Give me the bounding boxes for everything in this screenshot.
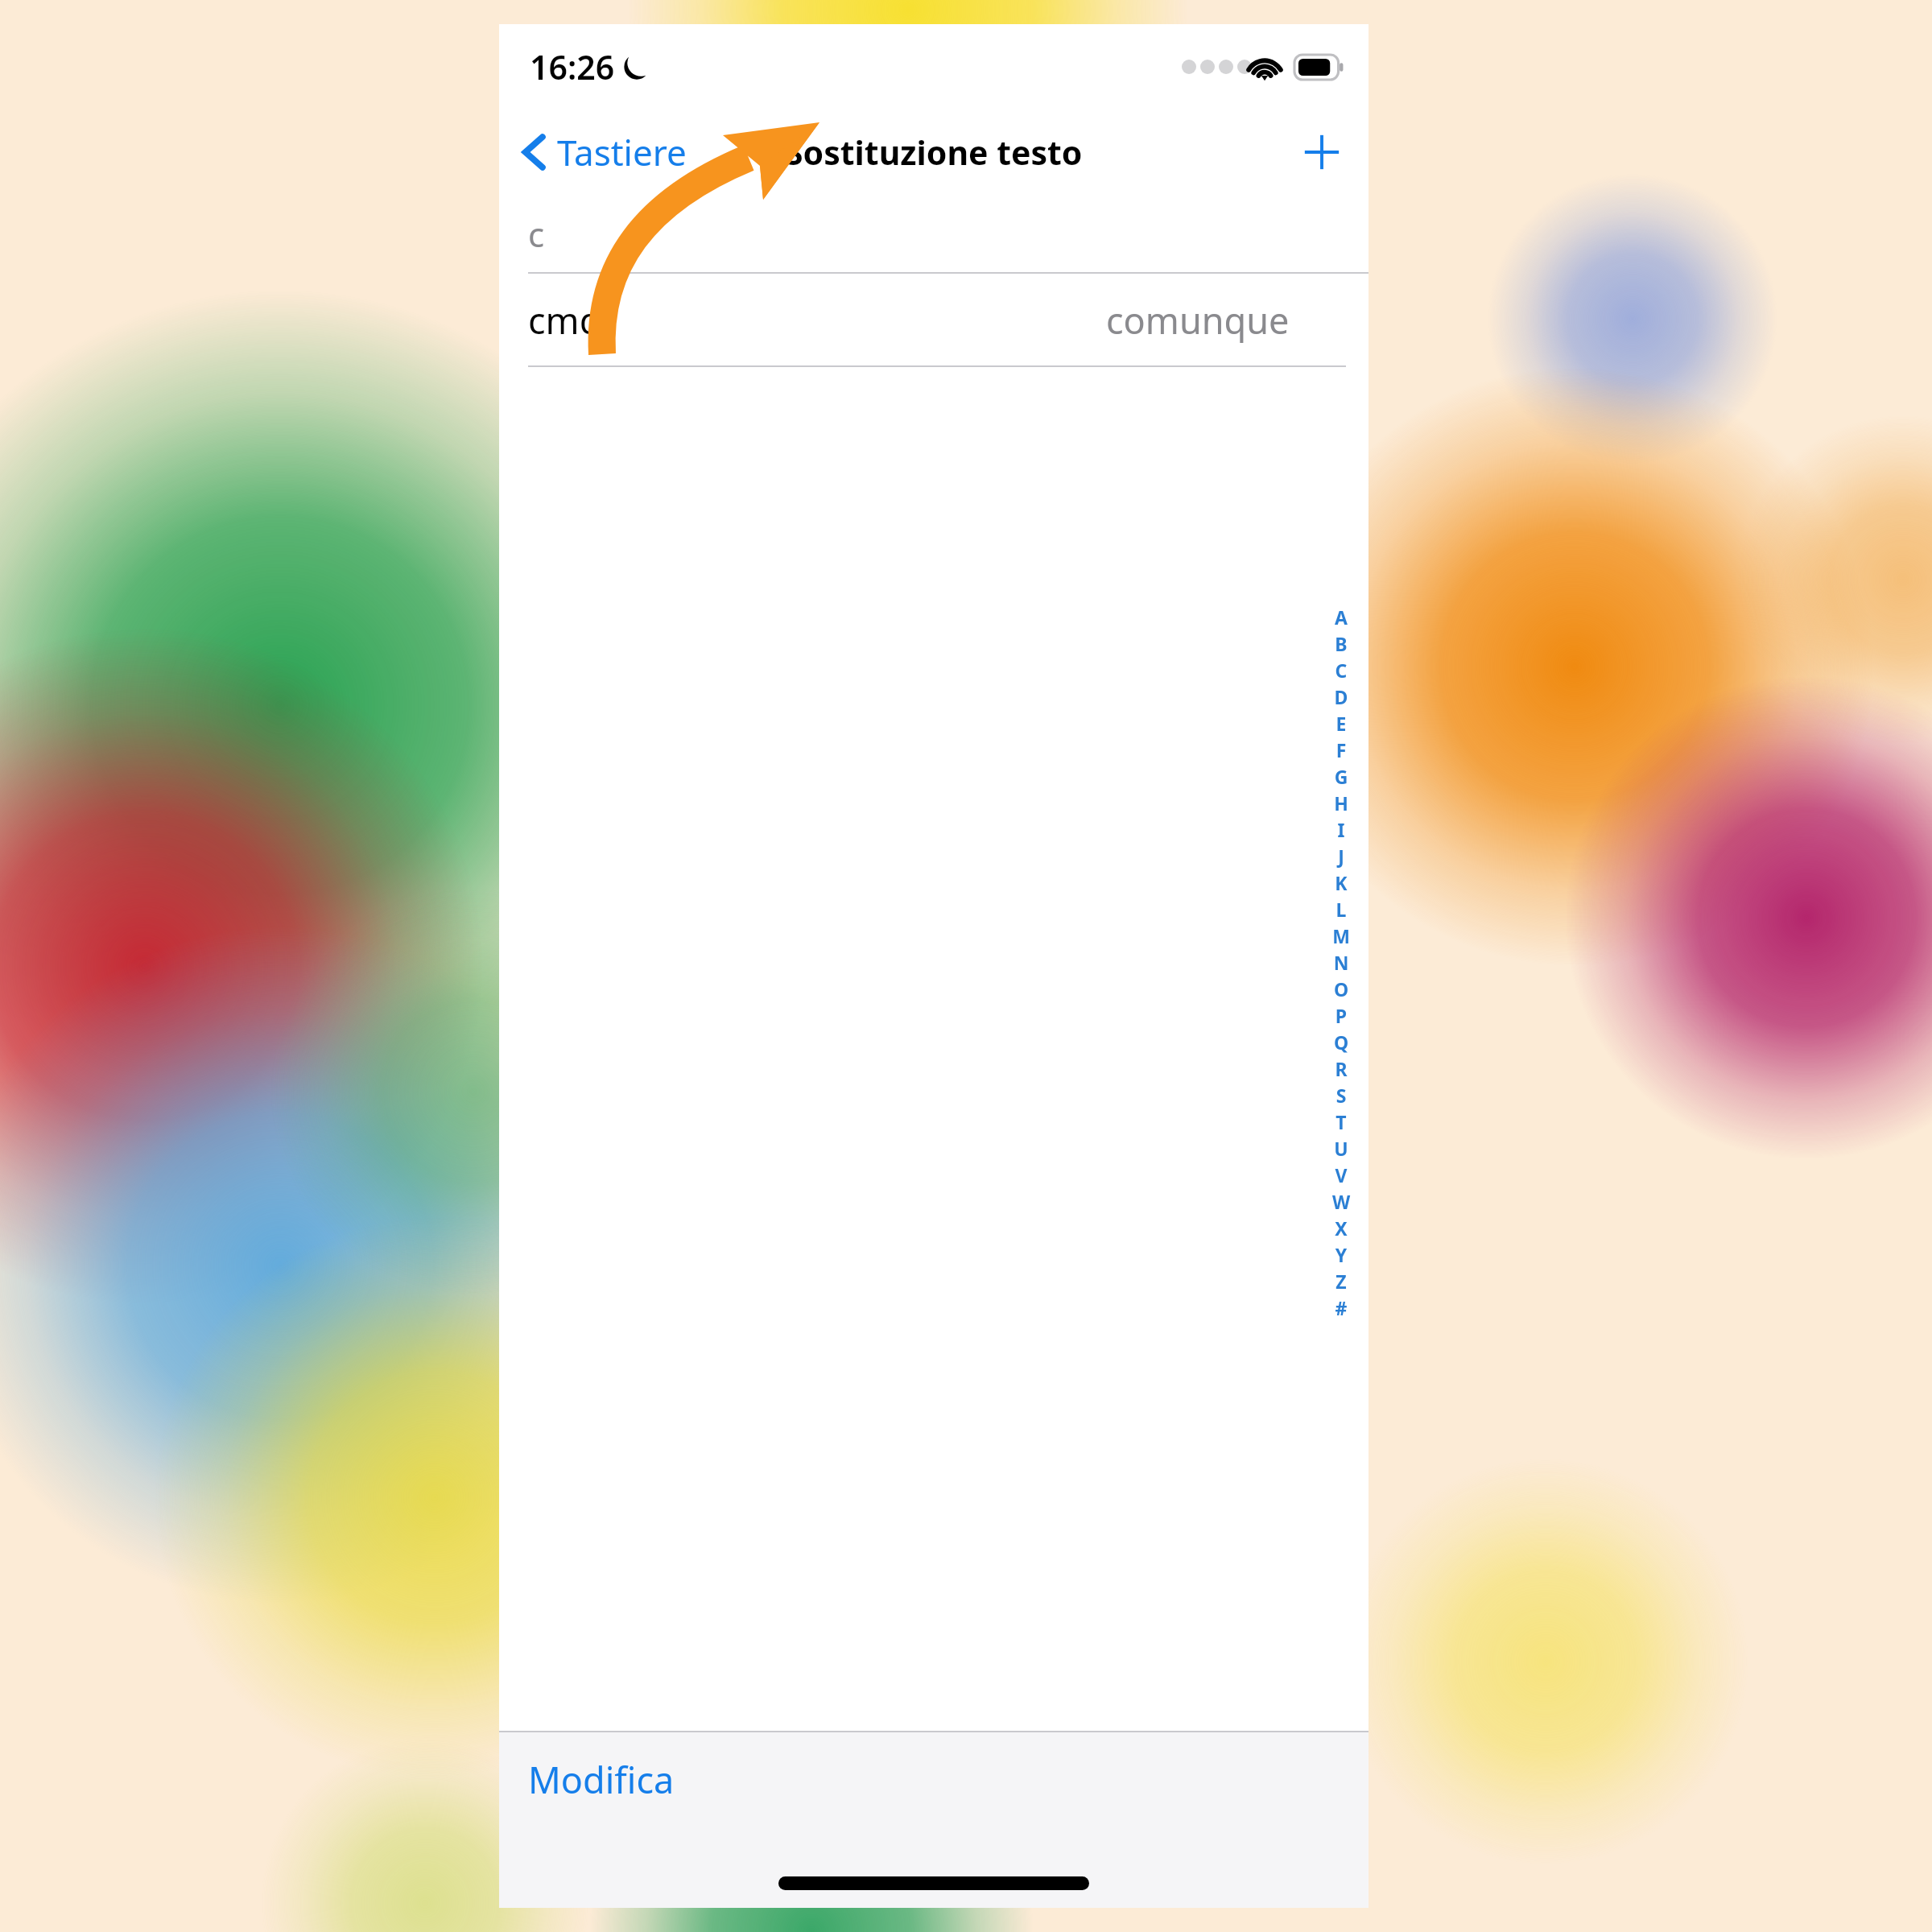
staticText: G — [1325, 764, 1357, 789]
staticText: P — [1325, 1003, 1357, 1028]
staticText: U — [1325, 1136, 1357, 1161]
staticText: V — [1325, 1162, 1357, 1187]
staticText: Y — [1325, 1242, 1357, 1267]
button[interactable]: Aggiungi sostituzione — [1293, 123, 1351, 181]
staticText: O — [1325, 976, 1357, 1001]
staticText: comunque — [1106, 295, 1290, 345]
staticText: K — [1325, 870, 1357, 895]
staticText: cmq — [528, 295, 602, 345]
button[interactable]: cmq — [499, 274, 1368, 365]
button[interactable]: Indice alfabetico — [1325, 605, 1357, 1322]
staticText: Z — [1325, 1269, 1357, 1294]
button[interactable]: Tastiere — [517, 123, 693, 181]
staticText: E — [1325, 711, 1357, 736]
staticText: J — [1325, 844, 1357, 869]
staticText: R — [1325, 1056, 1357, 1081]
staticText: C — [1325, 658, 1357, 683]
staticText: Tastiere — [557, 128, 687, 176]
staticText: 16:26 — [530, 44, 615, 89]
staticText: M — [1325, 923, 1357, 948]
staticText: # — [1325, 1295, 1357, 1320]
staticText: S — [1325, 1083, 1357, 1108]
button[interactable]: Modifica — [520, 1747, 683, 1812]
staticText: I — [1325, 817, 1357, 842]
staticText: X — [1325, 1216, 1357, 1241]
staticText: F — [1325, 737, 1357, 762]
staticText: c — [528, 211, 545, 257]
staticText: A — [1325, 605, 1357, 630]
staticText: Sostituzione testo — [785, 130, 1083, 175]
staticText: B — [1325, 631, 1357, 656]
staticText: T — [1325, 1109, 1357, 1134]
staticText: Q — [1325, 1030, 1357, 1055]
staticText: L — [1325, 897, 1357, 922]
staticText: N — [1325, 950, 1357, 975]
staticText: H — [1325, 791, 1357, 815]
staticText: D — [1325, 684, 1357, 709]
staticText: W — [1325, 1189, 1357, 1214]
staticText: Modifica — [528, 1755, 675, 1804]
